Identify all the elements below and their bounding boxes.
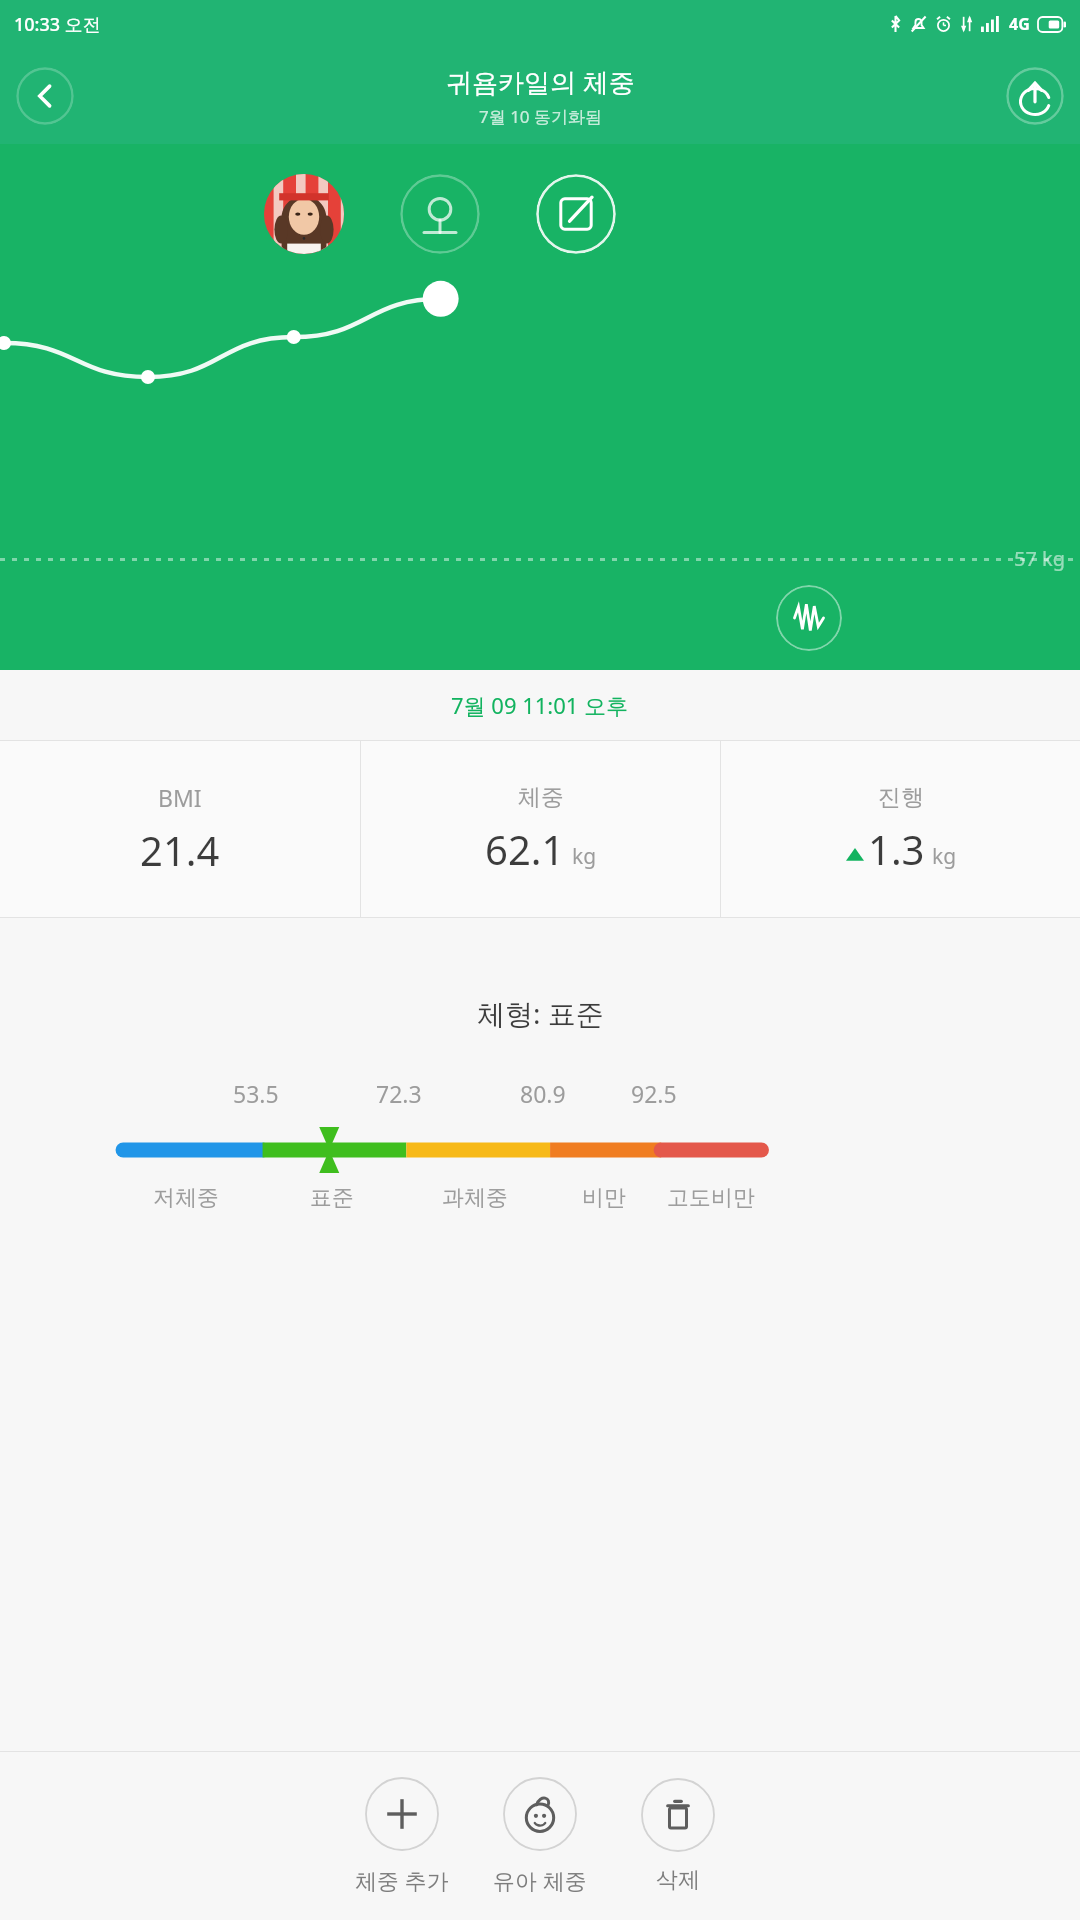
button[interactable]: Profile — [264, 174, 344, 254]
staticText: 62.1 — [485, 822, 565, 876]
staticText: 고도비만 — [667, 1184, 755, 1212]
staticText: 유아 체중 — [493, 1865, 587, 1895]
staticText: 표준 — [310, 1184, 354, 1212]
staticText: 체중 추가 — [355, 1865, 449, 1895]
staticText: 57 kg — [1014, 545, 1066, 572]
staticText: BMI — [158, 782, 202, 813]
staticText: 7월 09 11:01 오후 — [451, 690, 629, 720]
staticText: 과체중 — [442, 1184, 508, 1212]
staticText: 체중 — [518, 783, 564, 812]
staticText: 7월 10 동기화됨 — [479, 105, 603, 128]
button[interactable]: Add weight — [337, 1777, 467, 1895]
staticText: 삭제 — [656, 1866, 700, 1894]
staticText: 53.5 — [233, 1078, 279, 1109]
staticText: 80.9 — [520, 1078, 566, 1109]
button[interactable]: Share — [1006, 67, 1064, 125]
staticText: 72.3 — [376, 1078, 422, 1109]
staticText: 92.5 — [631, 1078, 677, 1109]
staticText: 비만 — [582, 1184, 626, 1212]
button[interactable]: Body metrics — [400, 174, 480, 254]
button[interactable]: BMI — [0, 741, 360, 917]
staticText: kg — [932, 842, 957, 871]
staticText: 10:33 오전 — [14, 12, 101, 37]
button[interactable]: Back — [16, 67, 74, 125]
staticText: 저체중 — [153, 1184, 219, 1212]
staticText: kg — [572, 842, 597, 871]
button[interactable]: 체중 — [361, 741, 720, 917]
staticText: 1.3 — [868, 822, 925, 876]
staticText: 체형: 표준 — [477, 994, 604, 1032]
button[interactable]: 진행 — [721, 741, 1080, 917]
staticText: 진행 — [878, 783, 924, 812]
staticText: 21.4 — [140, 823, 220, 877]
button[interactable]: Body composition — [776, 585, 842, 651]
button[interactable]: Edit — [536, 174, 616, 254]
staticText: 귀욤카일의 체중 — [446, 64, 635, 100]
button[interactable]: Baby weight — [475, 1777, 605, 1895]
button[interactable]: Delete — [613, 1778, 743, 1894]
staticText: 4G — [1009, 13, 1030, 35]
